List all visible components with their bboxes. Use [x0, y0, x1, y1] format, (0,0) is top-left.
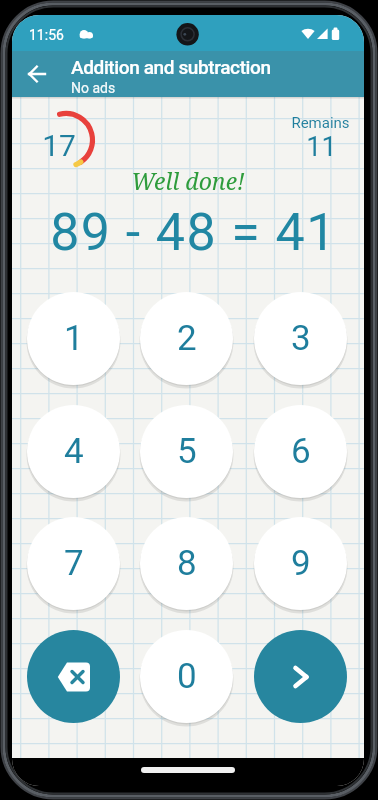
- button[interactable]: 4: [27, 405, 120, 498]
- button[interactable]: [27, 630, 120, 723]
- button[interactable]: 7: [27, 517, 120, 610]
- staticText: 8: [177, 543, 197, 584]
- staticText: 11: [306, 131, 337, 163]
- staticText: 7: [64, 543, 84, 584]
- staticText: 4: [64, 431, 84, 472]
- button[interactable]: 6: [254, 405, 347, 498]
- staticText: 0: [177, 656, 197, 697]
- button[interactable]: 8: [140, 517, 233, 610]
- staticText: Addition and subtraction: [71, 56, 271, 78]
- staticText: Remains: [291, 114, 350, 132]
- button[interactable]: [254, 630, 347, 723]
- staticText: 1: [64, 318, 84, 359]
- staticText: 5: [177, 431, 197, 472]
- button[interactable]: 1: [27, 292, 120, 385]
- staticText: 6: [291, 431, 311, 472]
- button[interactable]: 0: [140, 630, 233, 723]
- staticText: 17: [42, 128, 76, 163]
- staticText: 3: [291, 318, 311, 359]
- button[interactable]: 2: [140, 292, 233, 385]
- staticText: 9: [291, 543, 311, 584]
- staticText: 2: [177, 318, 197, 359]
- button[interactable]: 9: [254, 517, 347, 610]
- staticText: Well done!: [131, 165, 245, 196]
- staticText: No ads: [71, 80, 116, 96]
- staticText: 89 - 48 = 41: [50, 202, 337, 263]
- button[interactable]: [12, 51, 62, 97]
- button[interactable]: 5: [140, 405, 233, 498]
- button[interactable]: 3: [254, 292, 347, 385]
- staticText: 11:56: [29, 27, 64, 43]
